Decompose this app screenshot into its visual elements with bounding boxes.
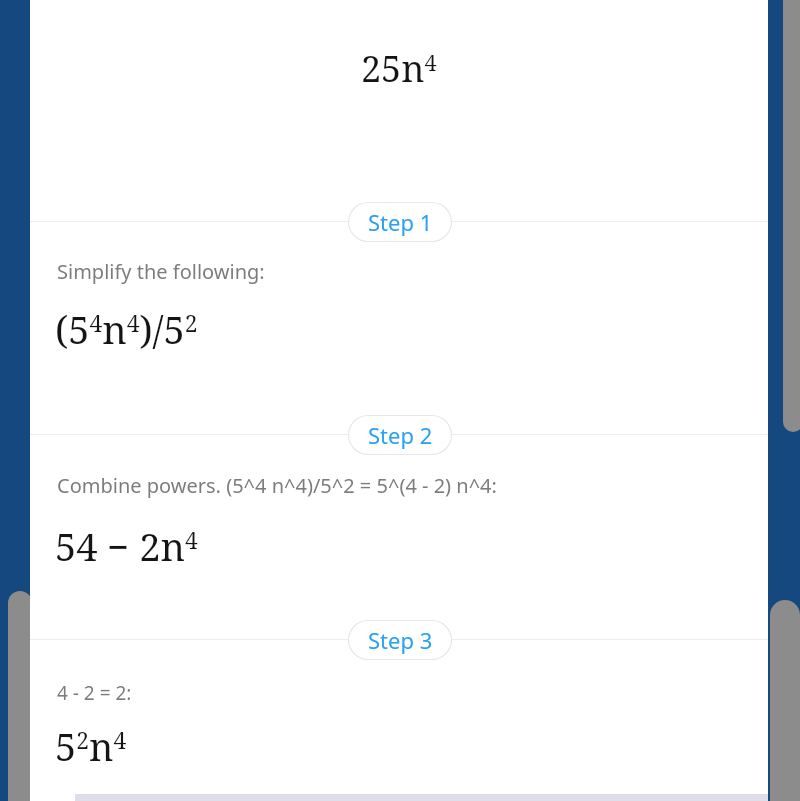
staticText: Combine powers. (5^4 n^4)/5^2 = 5^(4 - 2… xyxy=(57,472,497,499)
staticText: Step 1 xyxy=(368,207,433,237)
staticText: 4 - 2 = 2: xyxy=(57,680,132,706)
staticText: (54n4)/52 xyxy=(55,303,198,355)
button[interactable]: Step 1 xyxy=(348,202,452,242)
button[interactable]: Step 3 xyxy=(348,620,452,660)
staticText: Step 2 xyxy=(368,420,433,450)
staticText: 52n4 xyxy=(55,720,127,772)
button[interactable]: Step 2 xyxy=(348,415,452,455)
staticText: Step 3 xyxy=(368,625,433,655)
staticText: Simplify the following: xyxy=(57,258,265,285)
staticText: 54 − 2n4 xyxy=(55,520,198,572)
staticText: 25n4 xyxy=(361,44,437,93)
